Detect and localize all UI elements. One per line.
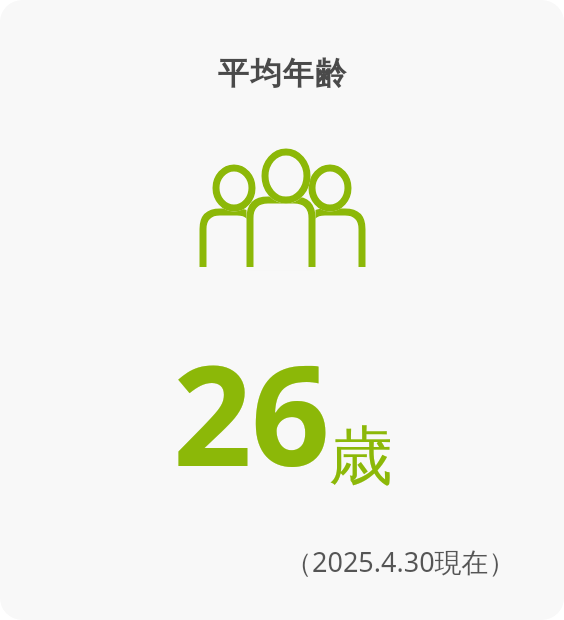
staticText: 歳 xyxy=(329,416,393,497)
other: Group of people xyxy=(196,150,364,272)
staticText: 26 xyxy=(173,318,329,506)
button[interactable]: 平均年齢 xyxy=(0,0,564,620)
staticText: （2025.4.30現在） xyxy=(285,543,516,580)
staticText: 平均年齢 xyxy=(217,54,347,93)
